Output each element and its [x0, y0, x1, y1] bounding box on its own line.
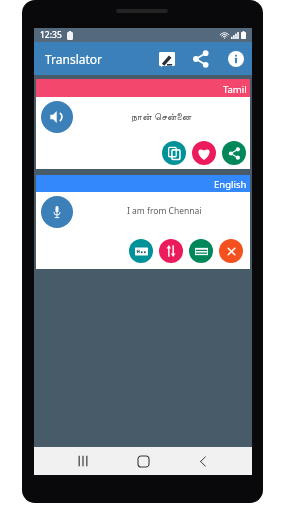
button[interactable]: Share translation	[222, 141, 246, 165]
button[interactable]: Speak Tamil	[41, 101, 73, 133]
button[interactable]: History	[189, 239, 213, 263]
button[interactable]: Recent apps	[72, 450, 94, 472]
button[interactable]: Swap languages	[159, 239, 183, 263]
button[interactable]: Compose	[155, 47, 179, 71]
button[interactable]: Favourite	[192, 141, 216, 165]
button[interactable]: Home	[132, 450, 154, 472]
staticText: English	[214, 178, 247, 191]
staticText: நான் சென்னை	[131, 109, 192, 123]
button[interactable]: Back	[192, 450, 214, 472]
staticText: Tamil	[223, 83, 247, 96]
staticText: 12:35	[40, 29, 62, 41]
button[interactable]: Clear	[219, 239, 243, 263]
button[interactable]: Keyboard	[129, 239, 153, 263]
button[interactable]: Info	[224, 47, 248, 71]
button[interactable]: Share	[189, 47, 213, 71]
button[interactable]: Microphone	[41, 196, 73, 228]
staticText: I am from Chennai	[127, 205, 202, 217]
staticText: Translator	[45, 51, 103, 67]
button[interactable]: Copy	[162, 141, 186, 165]
